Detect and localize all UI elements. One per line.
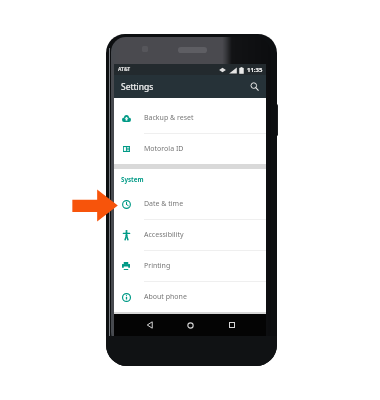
staticText: Motorola ID	[144, 144, 184, 154]
staticText: Date & time	[144, 199, 184, 209]
button[interactable]: Recents	[224, 317, 240, 333]
staticText: AT&T	[118, 66, 131, 73]
button[interactable]: Search	[248, 80, 261, 93]
staticText: Printing	[144, 261, 171, 271]
staticText: About phone	[144, 292, 187, 302]
staticText: Backup & reset	[144, 113, 194, 123]
button[interactable]: Back	[142, 317, 158, 333]
button[interactable]: Motorola ID	[114, 134, 266, 164]
button[interactable]: Accessibility	[114, 220, 266, 250]
staticText: Settings	[121, 81, 154, 93]
button[interactable]: Date & time	[114, 189, 266, 219]
button[interactable]: Backup & reset	[114, 103, 266, 133]
button[interactable]: Printing	[114, 251, 266, 281]
staticText: Accessibility	[144, 230, 184, 240]
staticText: 11:35	[247, 66, 263, 74]
button[interactable]: Home	[182, 317, 198, 333]
button[interactable]: About phone	[114, 282, 266, 312]
staticText: System	[121, 175, 144, 183]
